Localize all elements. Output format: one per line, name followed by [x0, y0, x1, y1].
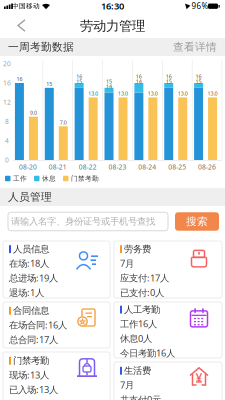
staticText: 工作16人 [120, 317, 157, 330]
staticText: 15 [166, 78, 172, 85]
staticText: 16 [196, 73, 202, 80]
staticText: 08-22 [79, 163, 97, 171]
staticText: 08-20 [19, 163, 37, 171]
staticText: 13.0 [148, 90, 158, 97]
button[interactable]: 人员信息 [3, 241, 110, 298]
button[interactable]: 门禁考勤 [3, 352, 110, 400]
staticText: 搜索 [186, 215, 208, 228]
staticText: 7月 [120, 257, 134, 269]
staticText: 08-23 [108, 163, 126, 171]
staticText: 15 [46, 80, 52, 87]
staticText: 16 [76, 73, 82, 80]
staticText: 已支付:0人 [120, 286, 164, 299]
staticText: 14 [106, 83, 112, 90]
staticText: 在场:18人 [9, 257, 49, 269]
staticText: 劳动力管理 [80, 18, 145, 34]
staticText: 08-21 [49, 163, 67, 171]
staticText: 08-24 [138, 163, 156, 171]
staticText: 共支付0元 [120, 393, 161, 400]
button[interactable]: 合同信息 [3, 302, 110, 348]
staticText: 查看详情 [173, 40, 217, 53]
staticText: 13.0 [88, 90, 98, 97]
staticText: 应支付:17人 [120, 272, 169, 284]
button[interactable]: 查看详情 [173, 40, 217, 53]
staticText: 总进场:19人 [9, 272, 58, 284]
staticText: 13.0 [178, 90, 188, 97]
button[interactable]: 搜索 [175, 212, 219, 231]
staticText: 生活费 [124, 365, 151, 376]
button[interactable]: 人工考勤 [114, 302, 222, 358]
staticText: 中国移动 [12, 2, 40, 10]
staticText: 7.0 [60, 119, 67, 126]
staticText: 20 [3, 59, 11, 68]
button[interactable]: 劳务费 [114, 241, 222, 298]
staticText: 退场:1人 [9, 286, 44, 299]
staticText: 13.0 [208, 90, 218, 97]
staticText: 96% [191, 1, 208, 11]
staticText: 16 [136, 73, 142, 80]
staticText: 08-25 [168, 163, 186, 171]
staticText: 8 [5, 117, 9, 126]
staticText: 在场合同:16人 [9, 319, 67, 331]
button[interactable]: 请输入名字、身份证号或手机号查找 [8, 212, 168, 231]
staticText: 门禁考勤 [13, 355, 49, 366]
staticText: 总合同:17人 [9, 333, 58, 346]
staticText: 一周考勤数据 [8, 40, 74, 53]
staticText: 12 [3, 98, 11, 107]
staticText: 已入场:13人 [9, 383, 58, 396]
staticText: 16:30 [101, 0, 124, 12]
staticText: 4 [5, 136, 9, 145]
staticText: 9.0 [30, 109, 37, 116]
staticText: 15 [76, 78, 82, 85]
staticText: 15 [106, 78, 112, 85]
staticText: 门禁考勤 [71, 174, 99, 183]
staticText: 16 [3, 79, 11, 87]
button[interactable]: 生活费 [114, 362, 222, 400]
staticText: 工作 [13, 174, 27, 183]
staticText: 14 [136, 78, 142, 85]
staticText: 今日考勤16人 [120, 347, 175, 359]
staticText: 劳务费 [124, 243, 151, 255]
staticText: ¥ [195, 369, 202, 385]
button[interactable]: Back [15, 19, 27, 32]
staticText: 16 [16, 75, 22, 83]
staticText: 13.0 [118, 90, 128, 97]
staticText: 08-26 [198, 163, 216, 171]
staticText: 休息0人 [120, 332, 152, 344]
staticText: 人员信息 [13, 243, 49, 255]
staticText: 15 [196, 78, 202, 85]
staticText: 7月 [120, 379, 134, 391]
staticText: 0 [5, 156, 9, 164]
staticText: 16 [166, 73, 172, 80]
staticText: 现场:13人 [9, 369, 49, 381]
staticText: 请输入名字、身份证号或手机号查找 [11, 216, 155, 227]
staticText: 合同信息 [13, 305, 49, 316]
staticText: 休息 [42, 174, 56, 183]
staticText: 人工考勤 [124, 304, 160, 315]
staticText: 人员管理 [8, 190, 52, 203]
